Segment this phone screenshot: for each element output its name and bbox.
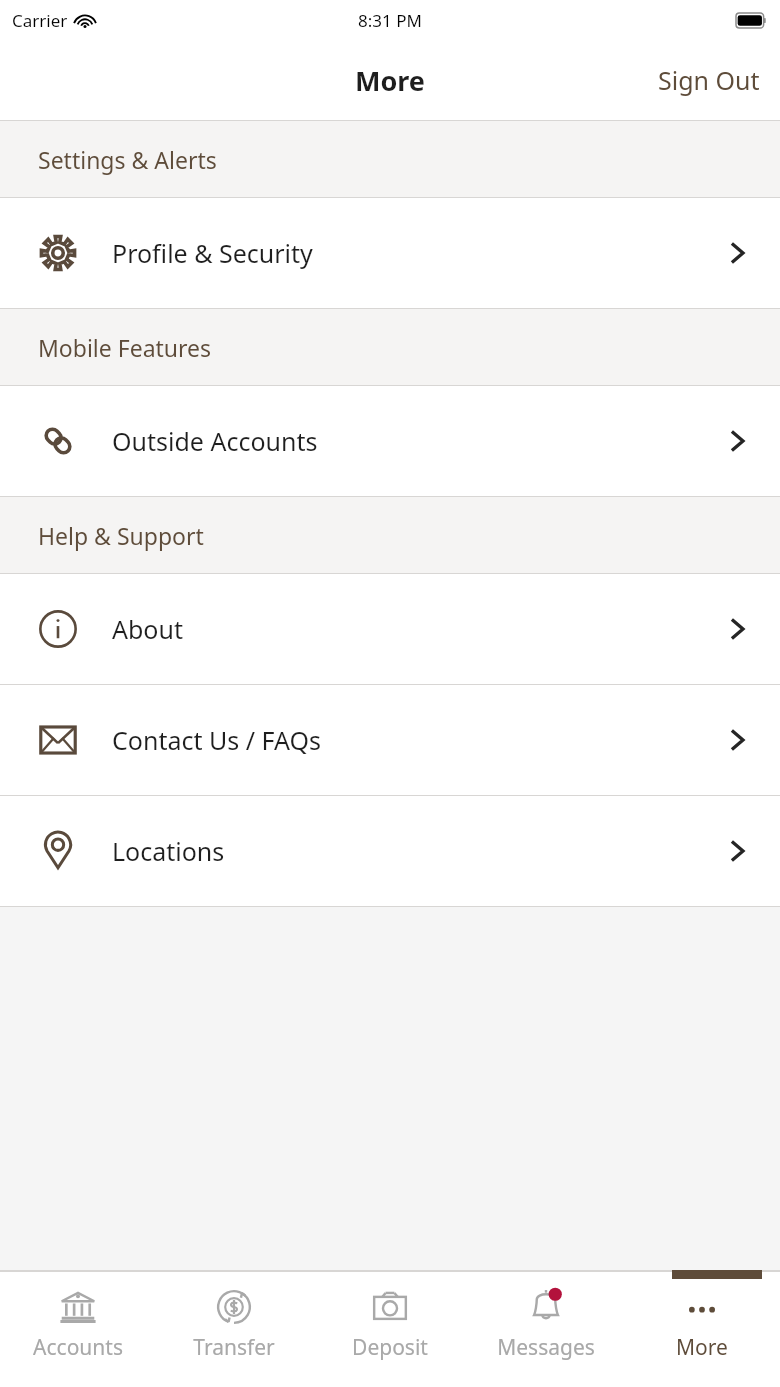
button[interactable]: Profile & Security bbox=[0, 198, 780, 308]
staticText: Deposit bbox=[352, 1333, 428, 1362]
staticText: Mobile Features bbox=[38, 332, 212, 363]
button[interactable]: About bbox=[0, 574, 780, 684]
staticText: More bbox=[355, 62, 425, 99]
staticText: Carrier bbox=[12, 9, 68, 32]
staticText: Settings & Alerts bbox=[38, 144, 217, 175]
staticText: Contact Us / FAQs bbox=[112, 723, 321, 757]
staticText: Messages bbox=[497, 1333, 595, 1362]
staticText: More bbox=[676, 1333, 728, 1362]
staticText: Profile & Security bbox=[112, 236, 313, 270]
button[interactable]: Messages bbox=[468, 1272, 624, 1387]
button[interactable]: Contact Us / FAQs bbox=[0, 685, 780, 795]
button[interactable]: Deposit bbox=[312, 1272, 468, 1387]
staticText: Sign Out bbox=[658, 63, 760, 97]
staticText: Outside Accounts bbox=[112, 424, 318, 458]
staticText: Locations bbox=[112, 834, 225, 868]
staticText: Help & Support bbox=[38, 520, 204, 551]
button[interactable]: Transfer bbox=[156, 1272, 312, 1387]
button[interactable]: More bbox=[624, 1272, 780, 1387]
button[interactable]: Locations bbox=[0, 796, 780, 906]
button[interactable]: Outside Accounts bbox=[0, 386, 780, 496]
staticText: Transfer bbox=[193, 1333, 275, 1362]
button[interactable]: Accounts bbox=[0, 1272, 156, 1387]
staticText: About bbox=[112, 612, 183, 646]
staticText: Accounts bbox=[33, 1333, 123, 1362]
staticText: 8:31 PM bbox=[358, 9, 422, 32]
button[interactable]: Sign Out bbox=[638, 49, 780, 111]
